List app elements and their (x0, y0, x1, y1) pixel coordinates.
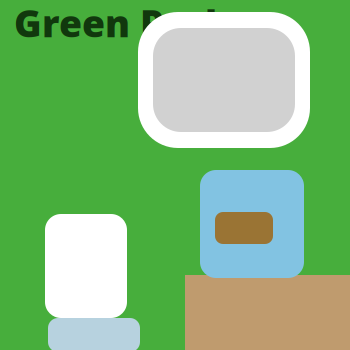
staticText: Green Park (14, 0, 230, 48)
